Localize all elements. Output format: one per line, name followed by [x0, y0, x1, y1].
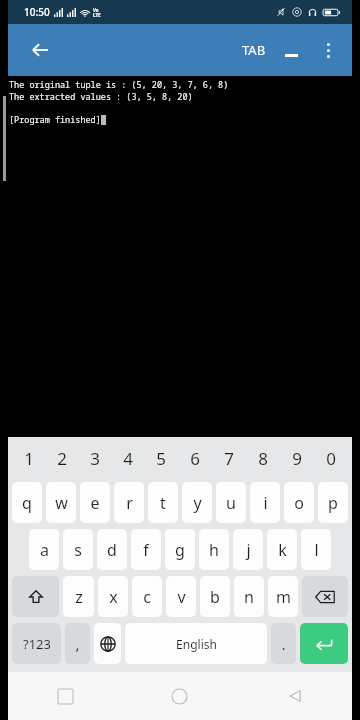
button[interactable]: g — [165, 529, 195, 570]
staticText: 5 — [156, 447, 166, 470]
staticText: s — [74, 539, 82, 561]
button[interactable]: 0 — [314, 437, 348, 479]
button[interactable]: f — [131, 529, 161, 570]
staticText: c — [143, 586, 151, 608]
staticText: k — [278, 539, 287, 561]
staticText: TAB — [242, 41, 266, 59]
staticText: The extracted values : (3, 5, 8, 20) — [9, 91, 193, 103]
staticText: 6 — [190, 447, 200, 470]
button[interactable]: w — [46, 482, 76, 523]
button[interactable]: b — [200, 576, 230, 617]
button[interactable]: Shift — [12, 576, 59, 617]
button[interactable]: . — [271, 623, 296, 664]
staticText: v — [177, 586, 186, 608]
staticText: e — [90, 492, 100, 514]
button[interactable]: a — [29, 529, 59, 570]
button[interactable]: 8 — [246, 437, 280, 479]
staticText: r — [126, 492, 133, 514]
button[interactable]: s — [63, 529, 93, 570]
staticText: n — [244, 586, 254, 608]
button[interactable]: m — [268, 576, 298, 617]
button[interactable]: 7 — [212, 437, 246, 479]
staticText: i — [263, 492, 268, 514]
staticText: w — [55, 492, 68, 514]
staticText: b — [210, 586, 220, 608]
staticText: a — [40, 539, 49, 561]
button[interactable]: v — [166, 576, 196, 617]
button[interactable]: 5 — [144, 437, 178, 479]
button[interactable]: x — [98, 576, 128, 617]
staticText: x — [109, 586, 118, 608]
button[interactable]: o — [284, 482, 314, 523]
staticText: 0 — [326, 447, 336, 470]
button[interactable]: 1 — [12, 437, 45, 479]
staticText: 9 — [292, 447, 302, 470]
button[interactable]: d — [97, 529, 127, 570]
button[interactable]: English — [125, 623, 267, 664]
staticText: u — [226, 492, 236, 514]
staticText: ?123 — [23, 635, 51, 653]
button[interactable]: c — [132, 576, 162, 617]
button[interactable]: Change language — [94, 623, 121, 664]
button[interactable]: 2 — [45, 437, 78, 479]
staticText: 1 — [24, 447, 34, 470]
staticText: p — [328, 492, 338, 514]
button[interactable]: k — [267, 529, 297, 570]
button[interactable]: 6 — [178, 437, 212, 479]
button[interactable]: j — [233, 529, 263, 570]
button[interactable]: Back — [22, 32, 58, 68]
staticText: y — [193, 492, 202, 514]
button[interactable]: Enter — [300, 623, 348, 664]
staticText: 2 — [57, 447, 67, 470]
staticText: d — [107, 539, 117, 561]
button[interactable]: Recent apps — [8, 672, 122, 720]
button[interactable]: TAB — [236, 33, 272, 67]
staticText: j — [246, 539, 251, 561]
button[interactable]: More options — [310, 32, 346, 68]
staticText: h — [209, 539, 219, 561]
staticText: f — [143, 539, 149, 561]
button[interactable]: h — [199, 529, 229, 570]
button[interactable]: ?123 — [12, 623, 61, 664]
staticText: [Program finished] — [9, 114, 101, 126]
button[interactable]: l — [301, 529, 331, 570]
staticText: The original tuple is : (5, 20, 3, 7, 6,… — [9, 79, 229, 91]
button[interactable]: 4 — [111, 437, 144, 479]
staticText: g — [175, 539, 185, 561]
staticText: q — [22, 492, 32, 514]
staticText: 10:50 — [24, 5, 50, 19]
staticText: , — [75, 634, 80, 654]
button[interactable]: Back — [237, 672, 352, 720]
button[interactable]: Home — [122, 672, 237, 720]
button[interactable]: u — [216, 482, 246, 523]
staticText: 8 — [258, 447, 268, 470]
button[interactable]: 3 — [78, 437, 111, 479]
button[interactable]: r — [114, 482, 144, 523]
button[interactable]: p — [318, 482, 348, 523]
button[interactable]: q — [12, 482, 42, 523]
staticText: o — [294, 492, 304, 514]
button[interactable]: , — [65, 623, 90, 664]
button[interactable]: t — [148, 482, 178, 523]
button[interactable]: i — [250, 482, 280, 523]
button[interactable]: n — [234, 576, 264, 617]
button[interactable]: z — [63, 576, 94, 617]
staticText: 4 — [123, 447, 133, 470]
button[interactable]: Backspace — [302, 576, 348, 617]
button[interactable]: 9 — [280, 437, 314, 479]
button[interactable]: e — [80, 482, 110, 523]
staticText: 7 — [224, 447, 234, 470]
staticText: English — [176, 636, 217, 652]
staticText: Vo LTE — [93, 7, 101, 18]
staticText: l — [314, 539, 319, 561]
staticText: z — [75, 586, 83, 608]
button[interactable]: y — [182, 482, 212, 523]
button[interactable]: Minimize — [272, 31, 310, 69]
staticText: t — [160, 492, 166, 514]
staticText: m — [276, 586, 291, 608]
staticText: 3 — [90, 447, 100, 470]
staticText: . — [281, 634, 286, 654]
